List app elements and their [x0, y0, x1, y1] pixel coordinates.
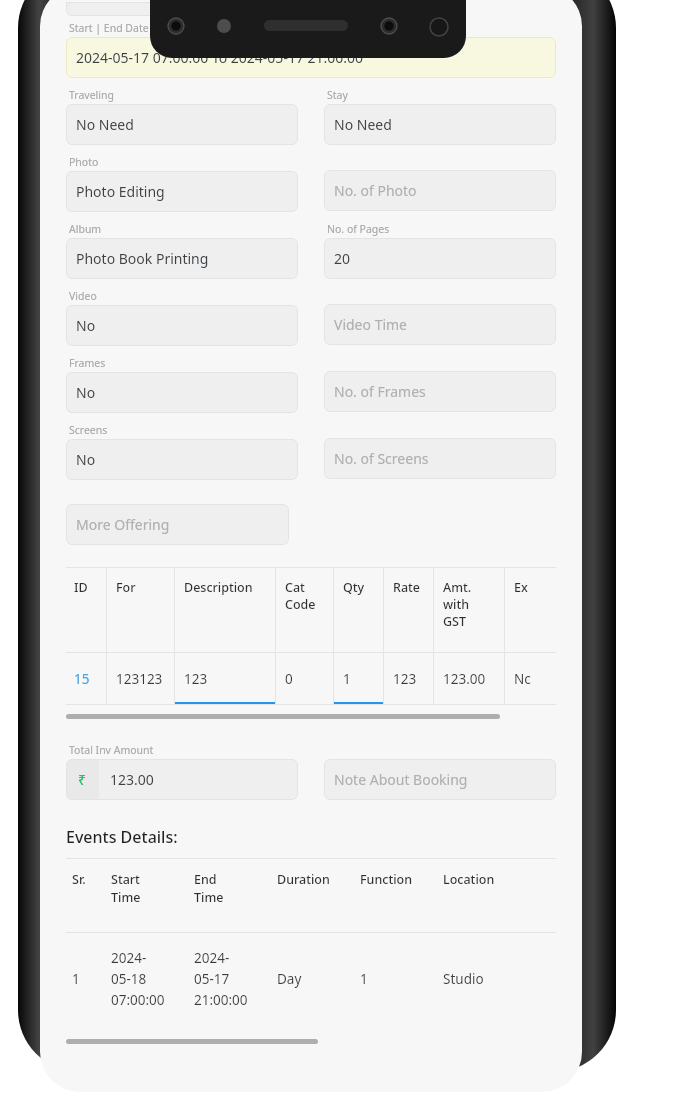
- staticText: Total Inv Amount: [69, 743, 154, 757]
- staticText: No Need: [334, 115, 392, 134]
- button[interactable]: More Offering: [66, 504, 289, 545]
- staticText: Events Details:: [66, 826, 178, 848]
- button[interactable]: 123: [174, 653, 275, 704]
- staticText: Function: [360, 871, 413, 888]
- staticText: No. of Screens: [334, 449, 429, 468]
- button[interactable]: 123.00: [433, 653, 504, 704]
- button[interactable]: Video Time: [324, 304, 556, 345]
- staticText: 2024-05-17 07:00:00 To 2024-05-17 21:00:…: [76, 48, 364, 67]
- staticText: 1: [343, 670, 351, 688]
- button[interactable]: 0: [275, 653, 333, 704]
- button[interactable]: No Need: [66, 104, 298, 145]
- staticText: Day: [277, 970, 302, 988]
- staticText: 2024- 05-18 07:00:00: [111, 949, 165, 1009]
- staticText: Photo Book Printing: [76, 249, 209, 268]
- button[interactable]: Photo Book Printing: [66, 238, 298, 279]
- button[interactable]: 15: [66, 653, 106, 704]
- staticText: ₹: [78, 770, 87, 789]
- button[interactable]: 1: [72, 933, 556, 1025]
- staticText: No: [76, 316, 96, 335]
- staticText: Description: [184, 579, 253, 596]
- button[interactable]: 20: [324, 238, 556, 279]
- staticText: 123: [393, 670, 417, 688]
- staticText: 1: [360, 970, 368, 988]
- staticText: No. of Photo: [334, 181, 417, 200]
- staticText: Frames: [69, 356, 106, 370]
- staticText: Start | End Date: [69, 21, 149, 35]
- staticText: Sr.: [72, 871, 86, 888]
- button[interactable]: No: [66, 305, 298, 346]
- staticText: Screens: [69, 423, 108, 437]
- button[interactable]: Nc: [504, 653, 556, 704]
- staticText: Video: [69, 289, 97, 303]
- staticText: No: [76, 450, 96, 469]
- staticText: 20: [334, 249, 351, 268]
- staticText: 0: [285, 670, 293, 688]
- staticText: 123123: [116, 670, 163, 688]
- staticText: 2024- 05-17 21:00:00: [194, 949, 248, 1009]
- staticText: Stay: [327, 88, 348, 102]
- staticText: 123.00: [110, 770, 154, 789]
- staticText: 1: [72, 970, 80, 988]
- staticText: Note About Booking: [334, 770, 468, 789]
- button[interactable]: No Need: [324, 104, 556, 145]
- staticText: More Offering: [76, 515, 170, 534]
- staticText: Traveling: [69, 88, 114, 102]
- button[interactable]: No: [66, 372, 298, 413]
- staticText: No: [76, 383, 96, 402]
- staticText: Duration: [277, 871, 330, 888]
- button[interactable]: 123123: [106, 653, 174, 704]
- staticText: 123.00: [443, 670, 486, 688]
- staticText: 15: [74, 670, 90, 688]
- staticText: Start Time: [111, 871, 141, 906]
- staticText: Ex: [514, 579, 528, 596]
- button[interactable]: No. of Photo: [324, 170, 556, 211]
- button[interactable]: 123: [383, 653, 433, 704]
- staticText: Photo Editing: [76, 182, 165, 201]
- button[interactable]: 1: [333, 653, 383, 704]
- staticText: Album: [69, 222, 102, 236]
- staticText: Qty: [343, 579, 365, 596]
- staticText: Video Time: [334, 315, 408, 334]
- button[interactable]: No. of Frames: [324, 371, 556, 412]
- button[interactable]: 2024-05-17 07:00:00 To 2024-05-17 21:00:…: [66, 37, 556, 78]
- staticText: Location: [443, 871, 495, 888]
- button[interactable]: ₹: [66, 759, 298, 800]
- staticText: 123: [184, 670, 208, 688]
- staticText: ID: [74, 579, 88, 596]
- staticText: End Time: [194, 871, 224, 906]
- staticText: Cat Code: [285, 579, 316, 613]
- staticText: Amt. with GST: [443, 579, 472, 630]
- staticText: Studio: [443, 970, 484, 988]
- staticText: No Need: [76, 115, 134, 134]
- button[interactable]: Photo Editing: [66, 171, 298, 212]
- staticText: For: [116, 579, 136, 596]
- button[interactable]: No. of Screens: [324, 438, 556, 479]
- staticText: No. of Pages: [327, 222, 390, 236]
- button[interactable]: No: [66, 439, 298, 480]
- button[interactable]: Note About Booking: [324, 759, 556, 800]
- staticText: Photo: [69, 155, 99, 169]
- staticText: No. of Frames: [334, 382, 426, 401]
- staticText: Rate: [393, 579, 421, 596]
- staticText: Nc: [514, 670, 531, 688]
